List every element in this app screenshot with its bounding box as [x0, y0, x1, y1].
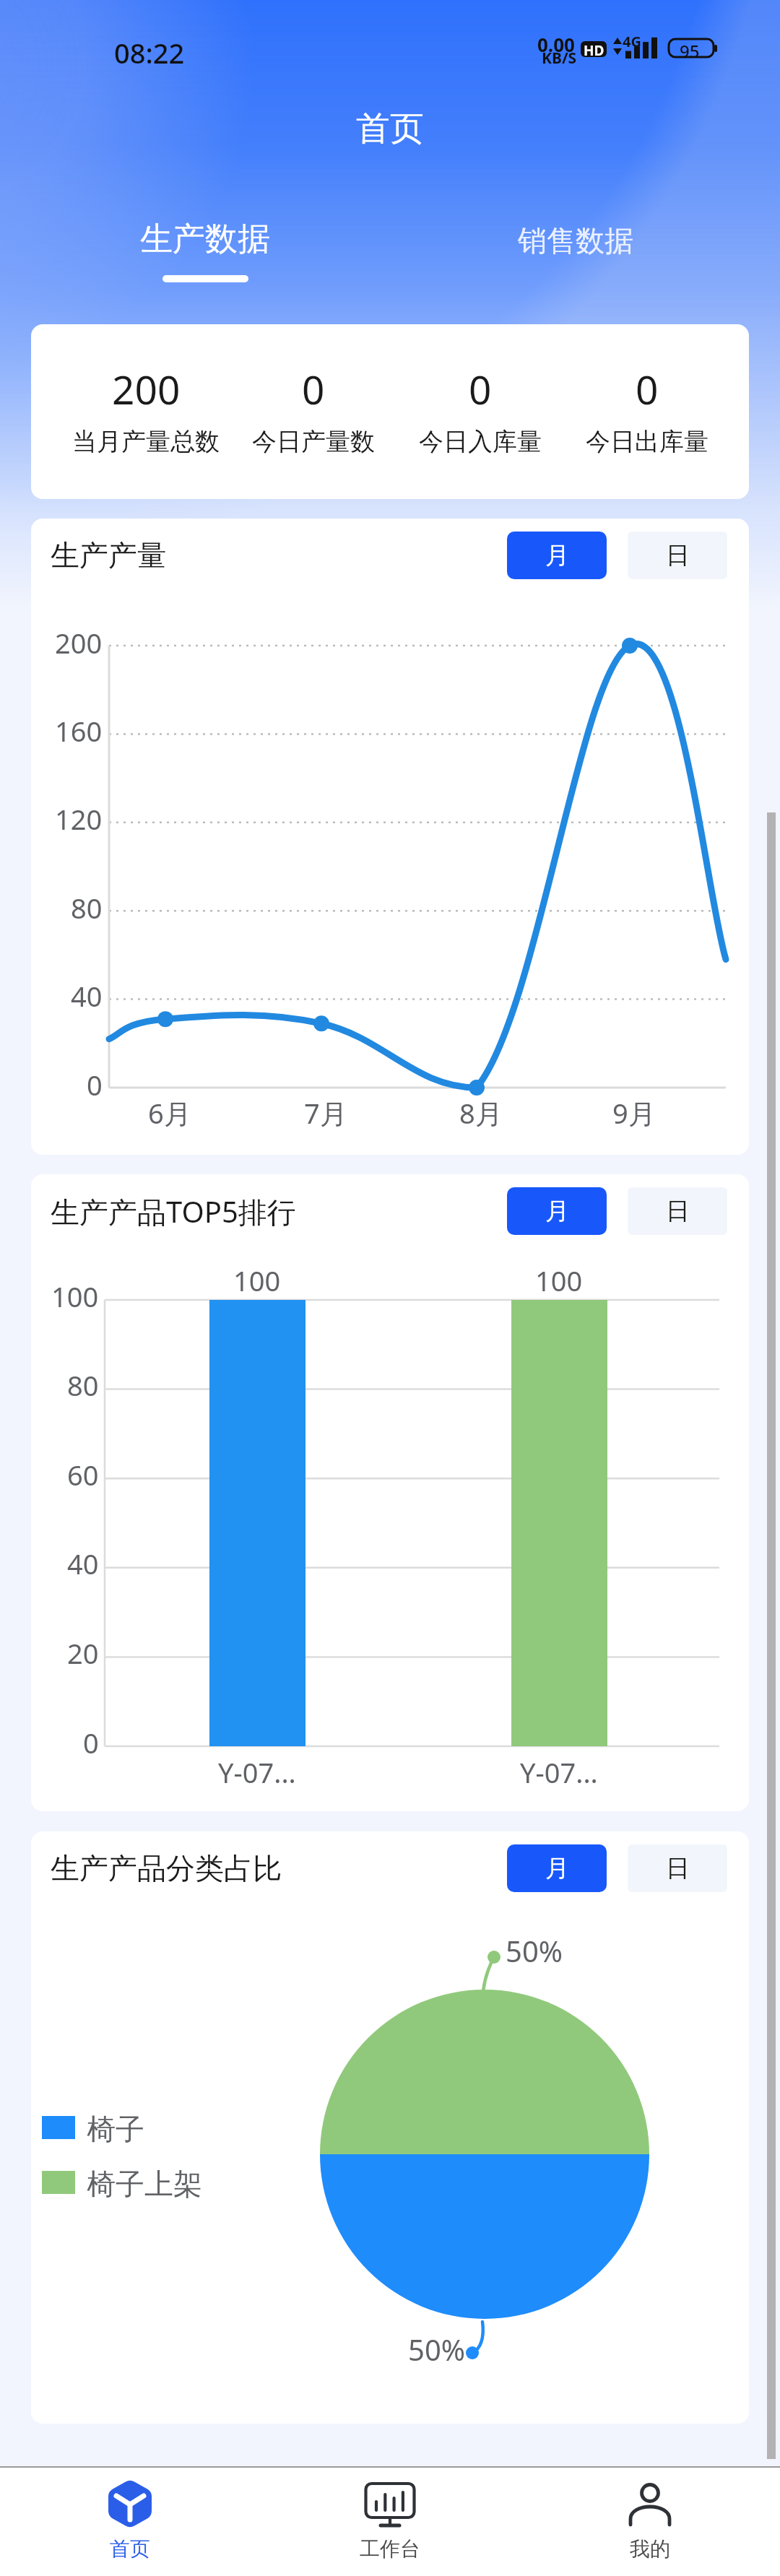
staticText: 100	[535, 1262, 583, 1299]
staticText: 首页	[110, 2536, 150, 2562]
staticText: Y-07...	[218, 1753, 296, 1791]
staticText: 0	[87, 1066, 103, 1103]
staticText: 200	[55, 624, 103, 662]
staticText: 7月	[304, 1094, 347, 1132]
staticText: 今日出库量	[586, 426, 708, 457]
staticText: 今日入库量	[419, 426, 542, 457]
staticText: 日	[666, 1196, 690, 1226]
staticText: 0.00	[537, 32, 575, 57]
staticText: 首页	[356, 108, 424, 150]
staticText: 月	[545, 540, 569, 571]
staticText: 4G	[623, 32, 641, 51]
staticText: 生产产量	[51, 537, 166, 573]
staticText: 9月	[612, 1094, 656, 1132]
staticText: HD	[584, 41, 604, 57]
staticText: 销售数据	[518, 222, 633, 259]
button[interactable]: 首页	[0, 2468, 260, 2576]
staticText: 60	[67, 1456, 99, 1493]
staticText: 椅子上架	[87, 2166, 202, 2202]
staticText: 当月产量总数	[72, 426, 220, 457]
staticText: 椅子	[87, 2111, 144, 2147]
staticText: 160	[55, 712, 103, 750]
button[interactable]: 日	[628, 532, 727, 579]
staticText: 20	[67, 1634, 99, 1672]
staticText: 120	[55, 800, 103, 838]
button[interactable]: 生产数据	[126, 207, 285, 293]
staticText: 0	[636, 362, 659, 416]
button[interactable]: 日	[628, 1187, 727, 1235]
staticText: 月	[545, 1853, 569, 1883]
staticText: 50%	[506, 1931, 563, 1970]
staticText: 100	[51, 1278, 99, 1315]
staticText: 今日产量数	[252, 426, 375, 457]
button[interactable]: 工作台	[260, 2468, 520, 2576]
button[interactable]: 月	[507, 1187, 607, 1235]
staticText: 日	[666, 540, 690, 571]
staticText: 生产产品TOP5排行	[51, 1192, 296, 1231]
button[interactable]: 我的	[520, 2468, 780, 2576]
staticText: 6月	[148, 1094, 191, 1132]
button[interactable]: 销售数据	[496, 207, 655, 293]
staticText: 日	[666, 1853, 690, 1883]
staticText: 80	[71, 889, 103, 927]
staticText: 0	[302, 362, 325, 416]
staticText: Y-07...	[520, 1753, 598, 1791]
staticText: 100	[233, 1262, 281, 1299]
button[interactable]: 日	[628, 1844, 727, 1892]
staticText: 生产数据	[140, 219, 270, 260]
staticText: 40	[71, 977, 103, 1015]
staticText: 50%	[408, 2330, 465, 2369]
staticText: 0	[83, 1724, 99, 1761]
staticText: 我的	[630, 2536, 670, 2562]
staticText: 0	[469, 362, 492, 416]
staticText: 工作台	[360, 2536, 420, 2562]
staticText: 08:22	[114, 34, 185, 71]
staticText: 40	[67, 1545, 99, 1582]
button[interactable]: 月	[507, 532, 607, 579]
button[interactable]: 月	[507, 1844, 607, 1892]
staticText: 8月	[459, 1094, 503, 1132]
staticText: 200	[112, 362, 181, 416]
staticText: 95	[680, 39, 700, 63]
staticText: 月	[545, 1196, 569, 1226]
staticText: 80	[67, 1366, 99, 1404]
staticText: KB/S	[542, 48, 577, 69]
staticText: 生产产品分类占比	[51, 1850, 282, 1886]
